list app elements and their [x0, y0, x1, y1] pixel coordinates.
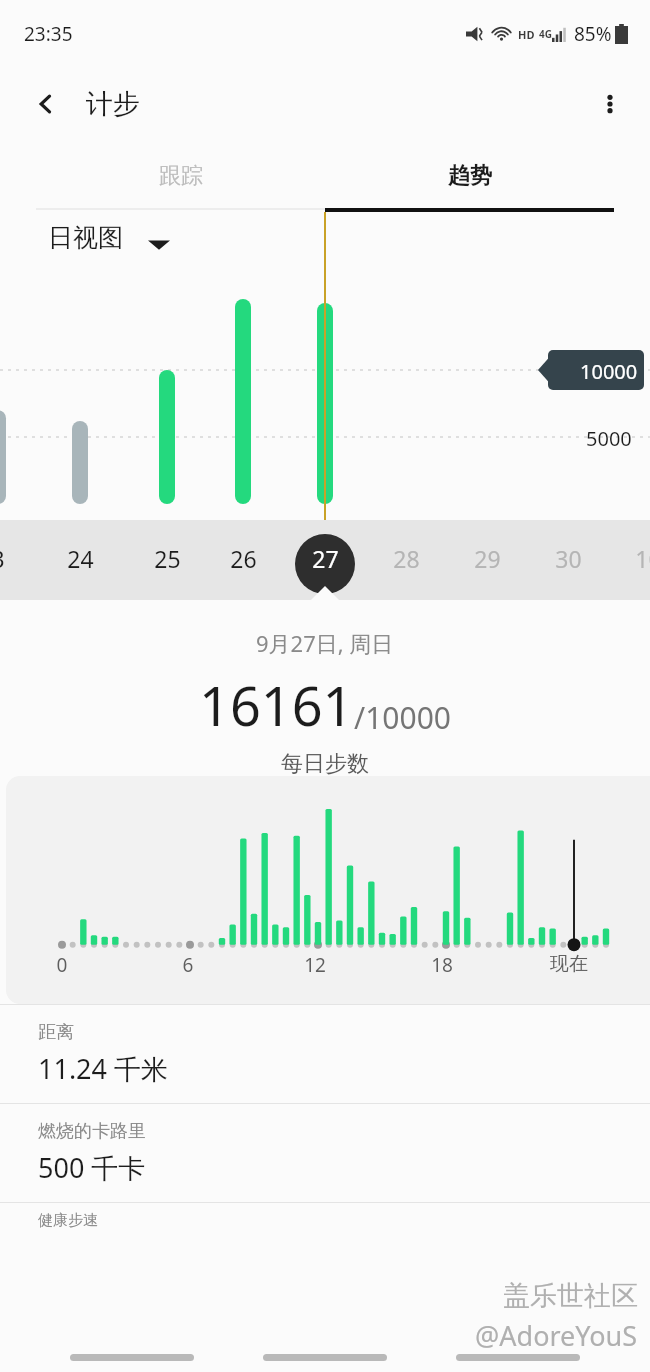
button[interactable]: 30 — [536, 520, 600, 600]
staticText: 27 — [312, 543, 339, 574]
staticText: 23:35 — [24, 21, 73, 47]
staticText: 0 — [40, 952, 84, 978]
button[interactable]: 25 — [135, 520, 199, 600]
button[interactable]: 24 — [48, 520, 112, 600]
staticText: 10 — [635, 543, 650, 574]
staticText: 10000 — [580, 358, 638, 385]
button[interactable]: 29 — [455, 520, 519, 600]
button[interactable]: More options — [586, 80, 634, 128]
staticText: 12 — [293, 952, 337, 978]
staticText: 9月27日, 周日 — [256, 628, 394, 658]
button[interactable]: 27 — [293, 520, 357, 600]
staticText: 28 — [393, 543, 420, 574]
staticText: 计步 — [86, 87, 140, 121]
staticText: 现在 — [547, 952, 591, 976]
staticText: 85% — [574, 21, 612, 47]
staticText: 11.24 千米 — [38, 1050, 169, 1087]
staticText: 6 — [166, 952, 210, 978]
staticText: 29 — [474, 543, 501, 574]
staticText: 跟踪 — [159, 162, 203, 190]
staticText: 3 — [0, 543, 5, 574]
button[interactable]: Change view — [148, 234, 170, 256]
staticText: 18 — [420, 952, 464, 978]
staticText: 健康步速 — [38, 1211, 98, 1230]
staticText: 燃烧的卡路里 — [38, 1120, 146, 1143]
staticText: 每日步数 — [281, 750, 369, 776]
staticText: 4G — [539, 27, 552, 41]
button[interactable]: 趋势 — [325, 140, 614, 212]
button[interactable]: 跟踪 — [36, 140, 325, 212]
staticText: 16161 — [199, 668, 354, 742]
button[interactable]: Navigation — [263, 1354, 387, 1361]
staticText: 26 — [230, 543, 257, 574]
staticText: 盖乐世社区 — [503, 1279, 638, 1313]
staticText: HD — [518, 27, 535, 42]
button[interactable]: 28 — [374, 520, 438, 600]
staticText: 24 — [67, 543, 94, 574]
staticText: @AdoreYouS — [475, 1317, 638, 1354]
staticText: 5000 — [586, 425, 632, 452]
staticText: 500 千卡 — [38, 1149, 146, 1186]
button[interactable]: Back — [22, 80, 70, 128]
staticText: 趋势 — [448, 162, 492, 190]
staticText: 30 — [555, 543, 582, 574]
button[interactable]: 26 — [211, 520, 275, 600]
staticText: /10000 — [354, 697, 451, 738]
staticText: 距离 — [38, 1021, 74, 1044]
button[interactable]: 3 — [0, 520, 30, 600]
staticText: 日视图 — [48, 222, 123, 253]
button[interactable]: 燃烧的卡路里 — [0, 1103, 650, 1202]
button[interactable]: Navigation — [456, 1354, 580, 1361]
button[interactable]: 10 — [616, 520, 650, 600]
staticText: 25 — [154, 543, 181, 574]
button[interactable]: Navigation — [70, 1354, 194, 1361]
button[interactable]: 距离 — [0, 1004, 650, 1103]
